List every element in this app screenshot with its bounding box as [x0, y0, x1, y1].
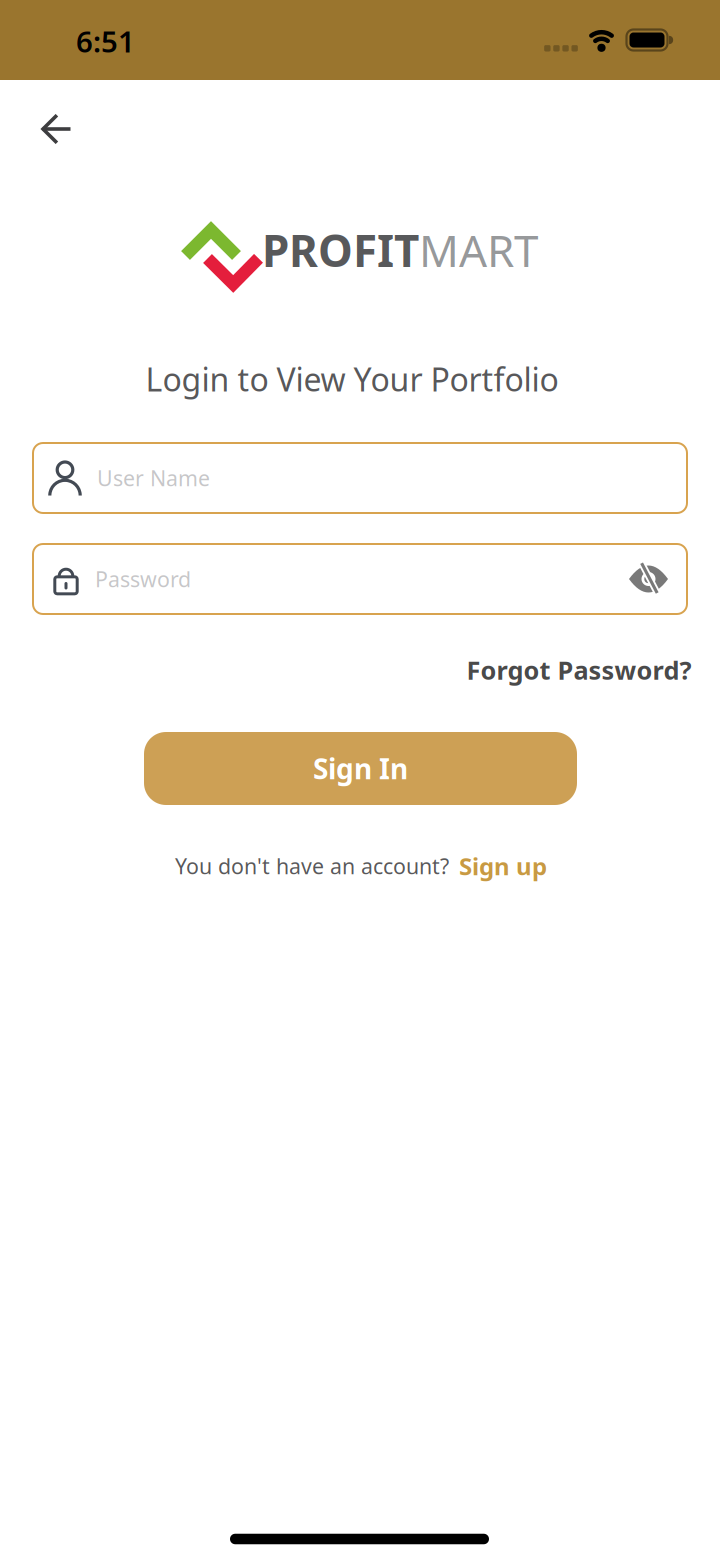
- button[interactable]: Sign In: [144, 732, 577, 805]
- staticText: You don't have an account?: [175, 852, 449, 880]
- button[interactable]: Forgot Password?: [466, 653, 691, 687]
- staticText: Sign up: [459, 850, 547, 882]
- button[interactable]: Password: [33, 544, 687, 614]
- button[interactable]: User Name: [33, 443, 687, 513]
- staticText: PROFIT: [262, 221, 419, 279]
- button[interactable]: Sign up: [459, 850, 547, 882]
- staticText: User Name: [97, 464, 210, 492]
- staticText: Password: [95, 565, 191, 593]
- staticText: MART: [419, 221, 538, 279]
- button[interactable]: [26, 99, 86, 159]
- staticText: Sign In: [313, 750, 408, 787]
- staticText: Forgot Password?: [466, 653, 691, 687]
- staticText: 6:51: [76, 21, 135, 60]
- staticText: Login to View Your Portfolio: [145, 358, 558, 400]
